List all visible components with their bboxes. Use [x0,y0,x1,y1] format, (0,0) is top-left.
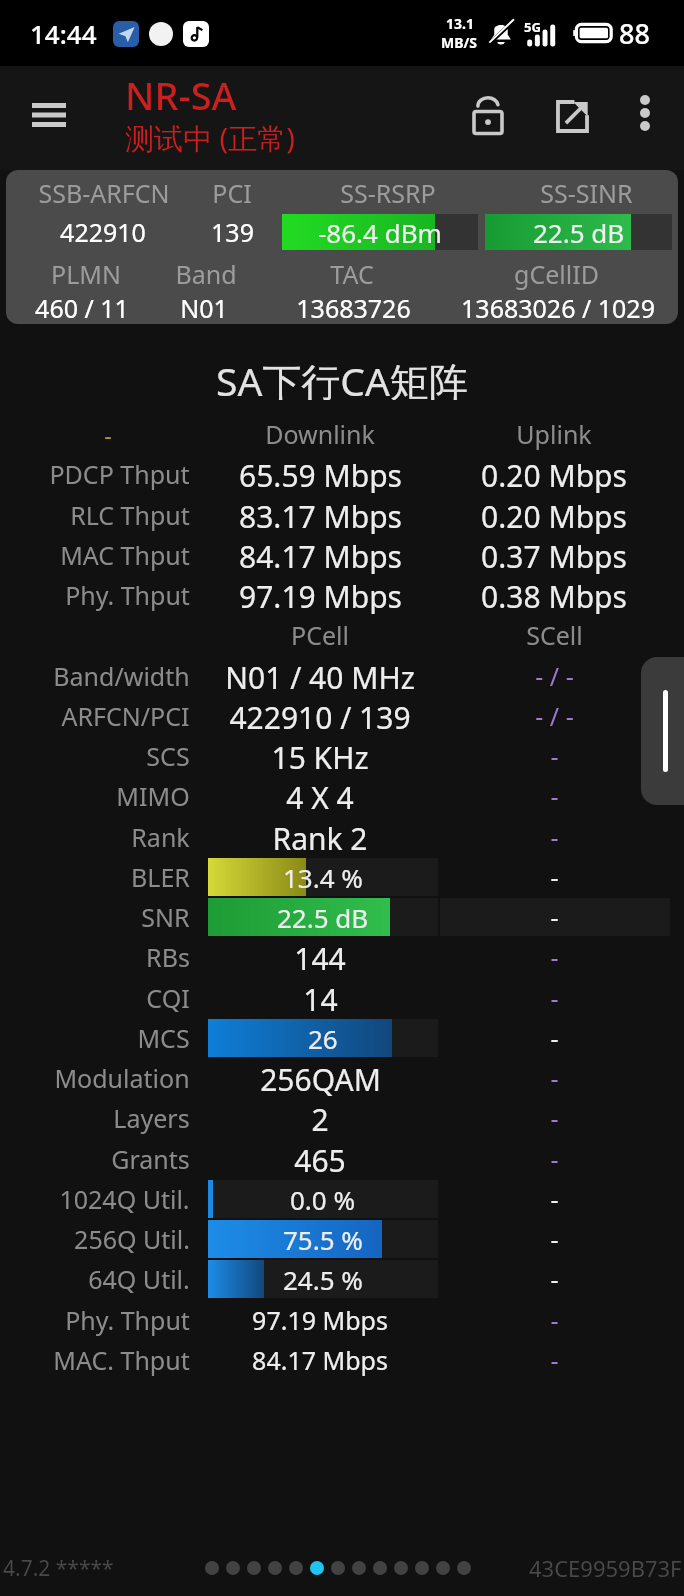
staticText: Rank [131,820,190,854]
staticText: 26 [308,1021,338,1056]
staticText: Uplink [516,417,592,451]
staticText: - [550,1182,559,1216]
staticText: - [550,1222,559,1256]
staticText: MCS [137,1021,190,1055]
staticText: 139 [211,215,254,249]
staticText: N01 [180,291,228,324]
staticText: - [104,419,112,450]
staticText: 84.17 Mbps [239,536,402,574]
staticText: 13.4 % [283,860,363,895]
staticText: PCI [212,176,252,210]
staticText: 88 [619,15,650,52]
staticText: SA下行CA矩阵 [216,354,468,400]
button[interactable]: Menu [14,80,84,150]
staticText: 43CE9959B73F [529,1553,682,1583]
staticText: PDCP Thput [49,457,190,491]
staticText: ARFCN/PCI [61,699,190,733]
staticText: 5G [524,18,541,36]
staticText: 2 [311,1099,329,1137]
staticText: - [550,1101,559,1135]
staticText: SSB-ARFCN [38,176,170,210]
staticText: CQI [146,981,190,1015]
staticText: 测试中 (正常) [125,118,295,158]
staticText: Layers [113,1101,190,1135]
staticText: gCellID [514,257,599,291]
staticText: 22.5 dB [277,900,369,935]
staticText: 64Q Util. [88,1262,190,1296]
staticText: 97.19 Mbps [252,1303,388,1337]
staticText: - [550,1021,559,1055]
button[interactable]: More options [612,80,678,146]
staticText: Phy. Thput [65,578,190,612]
staticText: 256Q Util. [74,1222,190,1256]
staticText: 256QAM [260,1059,381,1097]
staticText: - [550,1142,559,1176]
staticText: SS-RSRP [340,176,436,210]
staticText: TAC [330,257,374,291]
staticText: - [550,860,559,894]
staticText: BLER [131,860,190,894]
staticText: 13683726 [296,291,411,324]
staticText: SS-SINR [540,176,633,210]
staticText: Band [175,257,237,291]
staticText: RBs [146,940,190,974]
staticText: - / - [535,699,574,733]
staticText: Rank 2 [272,818,368,856]
staticText: MAC. Thput [53,1343,190,1377]
staticText: MIMO [116,779,190,813]
staticText: - [550,1262,559,1296]
staticText: SCS [146,739,190,773]
staticText: 422910 [60,215,146,249]
staticText: - [550,820,559,854]
staticText: 84.17 Mbps [252,1343,388,1377]
staticText: Phy. Thput [65,1303,190,1337]
staticText: 24.5 % [283,1262,363,1297]
button[interactable]: Share [536,80,608,152]
staticText: 22.5 dB [533,215,625,250]
staticText: Band/width [53,659,190,693]
staticText: 4 X 4 [286,777,354,815]
staticText: SNR [141,900,190,934]
staticText: 0.20 Mbps [481,455,627,493]
staticText: SCell [526,618,583,652]
staticText: 97.19 Mbps [239,576,402,614]
staticText: - / - [535,659,574,693]
staticText: -86.4 dBm [318,215,442,250]
staticText: RLC Thput [70,498,190,532]
staticText: - [550,900,559,934]
staticText: 83.17 Mbps [239,496,402,534]
staticText: Grants [111,1142,190,1176]
button[interactable]: Unlock [452,80,524,152]
staticText: 465 [294,1140,346,1178]
staticText: Downlink [265,417,375,451]
staticText: 422910 / 139 [229,697,411,735]
staticText: 15 KHz [271,737,369,775]
staticText: - [550,1061,559,1095]
staticText: 0.20 Mbps [481,496,627,534]
staticText: PLMN [51,257,121,291]
staticText: - [550,739,559,773]
staticText: - [550,779,559,813]
staticText: 13683026 / 1029 [461,291,655,324]
staticText: NR-SA [125,69,237,121]
staticText: - [550,1343,559,1377]
staticText: 0.0 % [290,1182,356,1217]
staticText: N01 / 40 MHz [225,657,415,695]
staticText: MB/S [441,33,478,52]
staticText: MAC Thput [60,538,190,572]
staticText: - [550,981,559,1015]
staticText: - [550,1303,559,1337]
staticText: 144 [294,938,346,976]
staticText: 13.1 [446,14,474,33]
staticText: 460 / 11 [35,291,129,324]
staticText: 0.38 Mbps [481,576,627,614]
staticText: 65.59 Mbps [239,455,402,493]
staticText: 75.5 % [283,1222,363,1257]
staticText: 1024Q Util. [59,1182,190,1216]
staticText: 14:44 [30,16,97,51]
staticText: 4.7.2 ***** [3,1554,114,1583]
staticText: Modulation [54,1061,190,1095]
staticText: 14 [303,979,338,1017]
staticText: PCell [291,618,349,652]
staticText: 0.37 Mbps [481,536,627,574]
